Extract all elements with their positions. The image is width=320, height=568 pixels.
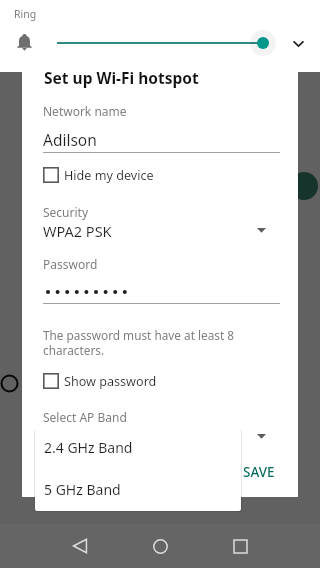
button[interactable]: Hide my device bbox=[43, 160, 154, 190]
button[interactable]: Add hotspot bbox=[290, 172, 318, 200]
staticText: Adilson bbox=[43, 129, 97, 150]
staticText: The password must have at least 8 charac… bbox=[43, 327, 243, 358]
staticText: Select AP Band bbox=[43, 409, 127, 425]
staticText: Ring bbox=[14, 7, 37, 21]
button[interactable]: Show password bbox=[43, 366, 157, 396]
button[interactable]: Recent apps bbox=[214, 524, 266, 568]
staticText: Show password bbox=[64, 373, 157, 390]
button[interactable]: Expand volume panel bbox=[286, 31, 310, 55]
staticText: Set up Wi-Fi hotspot bbox=[44, 67, 199, 88]
button[interactable]: Back bbox=[54, 524, 106, 568]
button[interactable]: Toggle bbox=[4, 374, 23, 393]
staticText: SAVE bbox=[243, 463, 275, 481]
button[interactable]: SAVE bbox=[237, 461, 281, 483]
staticText: Security bbox=[43, 204, 89, 220]
staticText: Network name bbox=[43, 103, 127, 119]
staticText: WPA2 PSK bbox=[43, 221, 112, 241]
staticText: Password bbox=[43, 256, 98, 272]
button[interactable]: 2.4 GHz Band bbox=[35, 430, 241, 470]
staticText: 5 GHz Band bbox=[44, 480, 121, 499]
staticText: Hide my device bbox=[64, 167, 154, 184]
staticText: 2.4 GHz Band bbox=[44, 438, 133, 457]
button[interactable]: Home bbox=[134, 524, 186, 568]
button[interactable]: 5 GHz Band bbox=[35, 471, 241, 511]
